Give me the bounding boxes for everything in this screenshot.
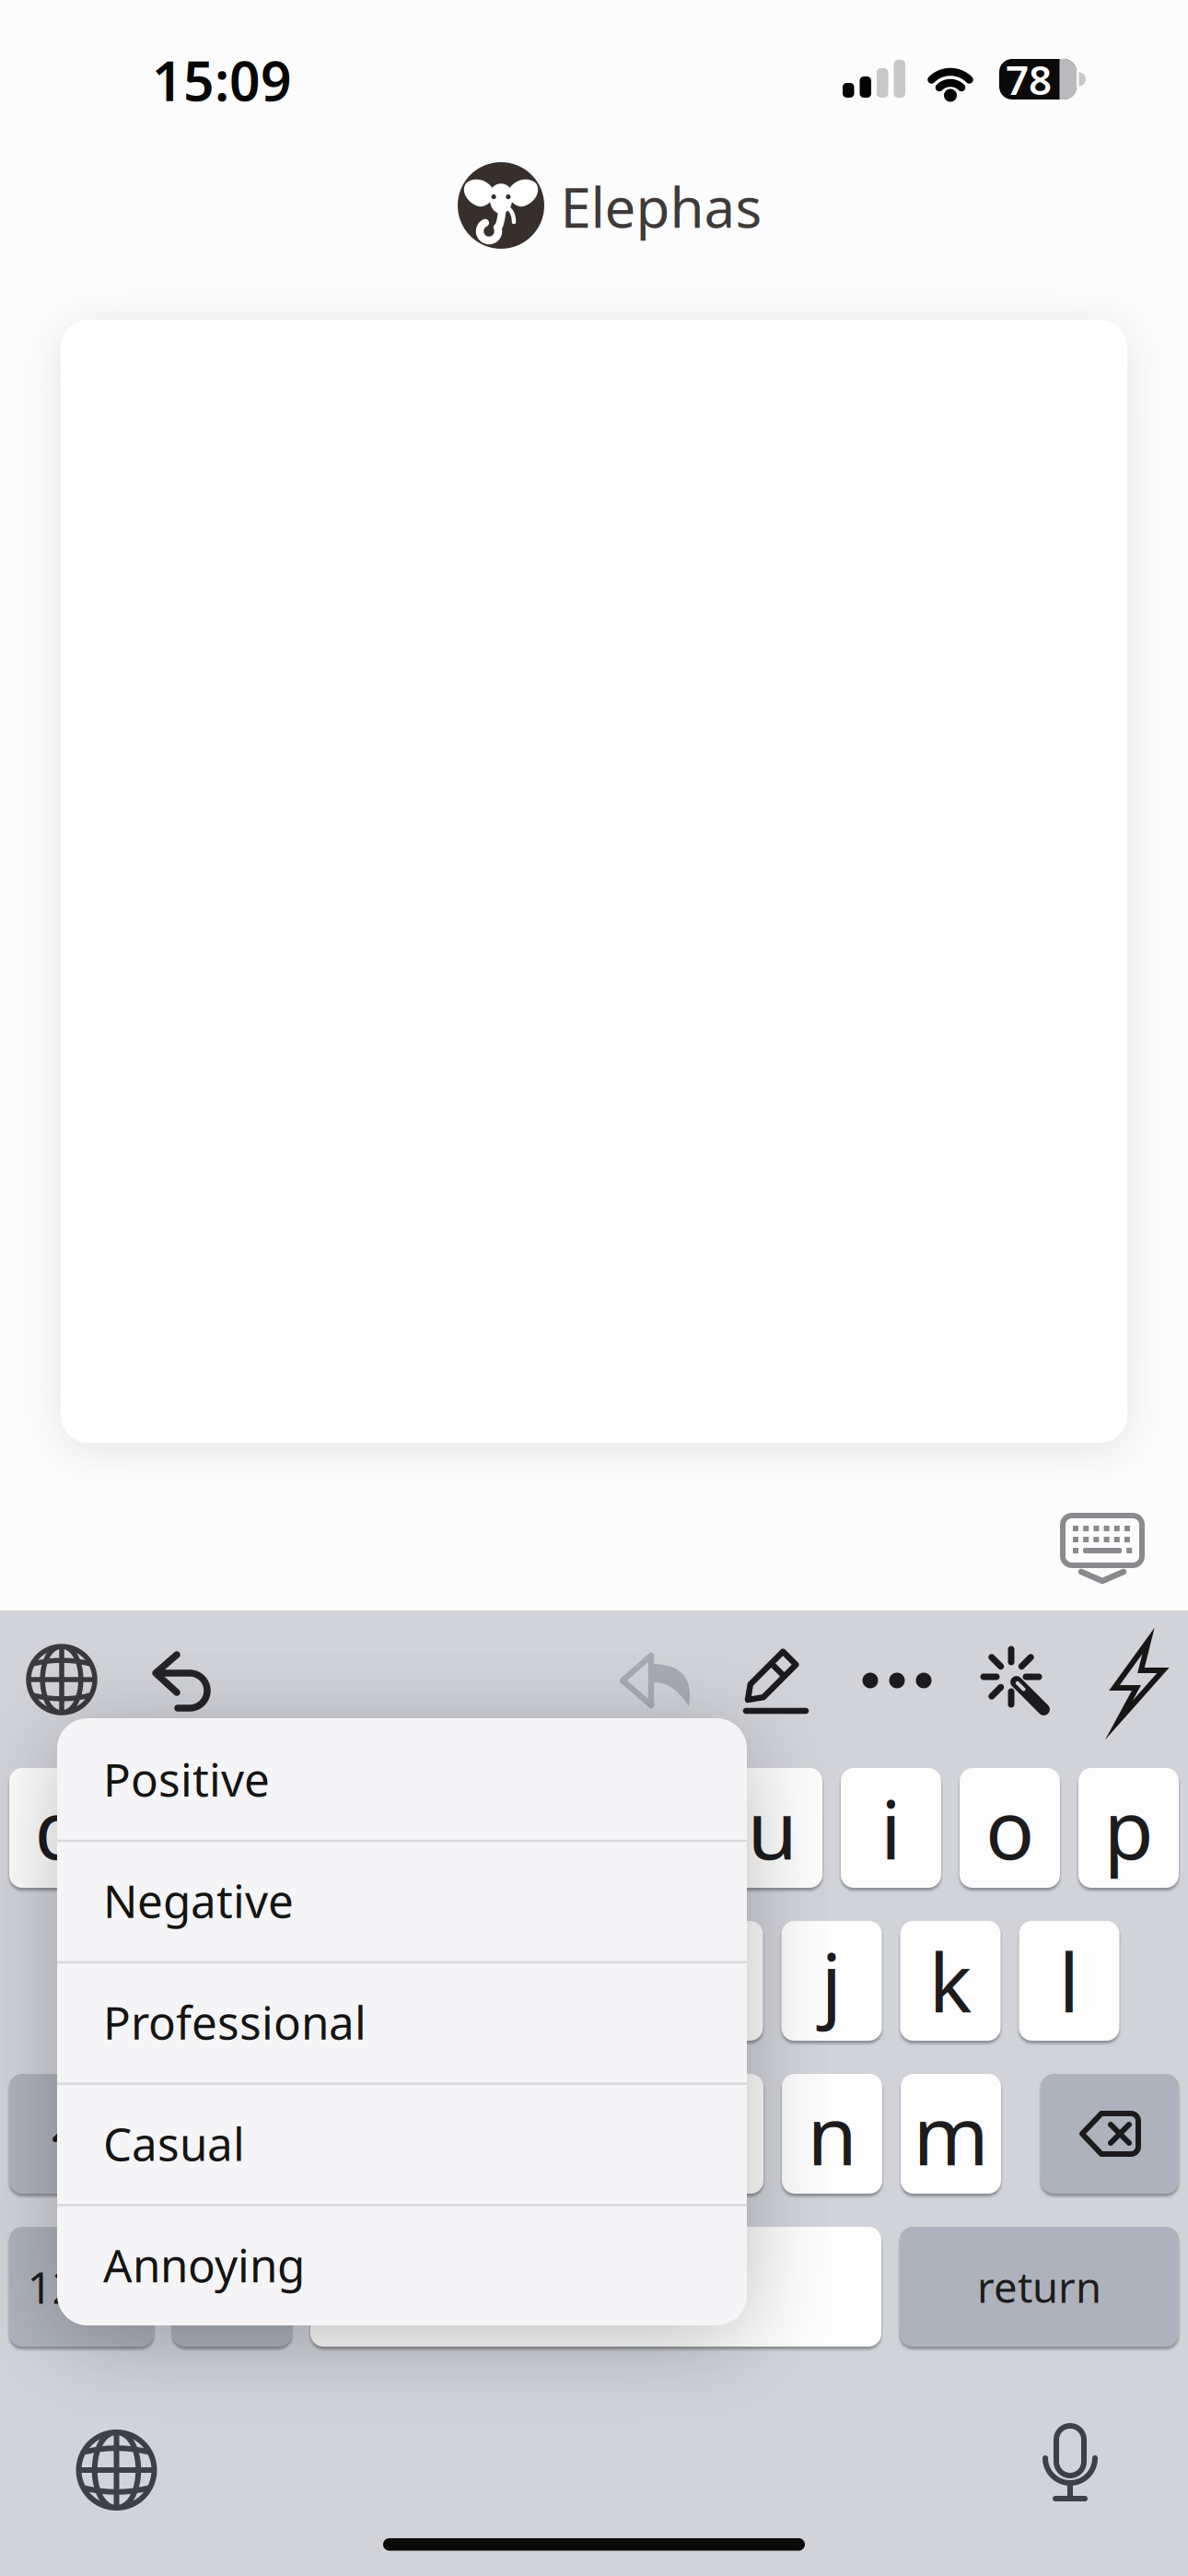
staticText: p xyxy=(1104,1774,1153,1882)
staticText: 123 xyxy=(27,2257,102,2316)
staticText: h xyxy=(688,1927,738,2035)
button[interactable] xyxy=(0,0,1188,2576)
button[interactable]: y xyxy=(603,1768,704,1888)
button[interactable]: Positive xyxy=(57,1718,747,1840)
staticText: r xyxy=(399,1774,432,1882)
staticText: y xyxy=(633,1774,674,1882)
staticText: Professional xyxy=(103,1992,367,2052)
staticText: m xyxy=(913,2080,989,2188)
staticText: Positive xyxy=(103,1749,270,1809)
button[interactable] xyxy=(0,0,1188,2576)
button[interactable]: l xyxy=(1019,1921,1119,2041)
button[interactable]: z xyxy=(188,2074,288,2194)
staticText: n xyxy=(807,2080,857,2188)
button[interactable]: h xyxy=(663,1921,763,2041)
button[interactable]: Professional xyxy=(57,1961,747,2083)
button[interactable]: n xyxy=(782,2074,882,2194)
button[interactable] xyxy=(1041,2074,1179,2194)
button[interactable] xyxy=(0,0,1188,2576)
staticText: Casual xyxy=(103,2113,245,2173)
staticText: c xyxy=(456,2080,495,2188)
staticText: o xyxy=(985,1774,1034,1882)
button[interactable]: j xyxy=(781,1921,882,2041)
staticText: s xyxy=(218,1927,257,2035)
button[interactable] xyxy=(0,0,1188,2576)
button[interactable]: e xyxy=(247,1768,347,1888)
button[interactable] xyxy=(0,0,1188,2576)
staticText: u xyxy=(747,1774,797,1882)
staticText: Elephas xyxy=(560,170,762,243)
button[interactable]: f xyxy=(425,1921,525,2041)
button[interactable]: v xyxy=(544,2074,645,2194)
button[interactable] xyxy=(0,0,1188,2576)
staticText: Negative xyxy=(103,1870,294,1931)
button[interactable]: w xyxy=(128,1768,228,1888)
button[interactable]: return xyxy=(900,2227,1179,2347)
staticText: v xyxy=(574,2080,615,2188)
button[interactable]: t xyxy=(484,1768,585,1888)
staticText: g xyxy=(569,1927,619,2035)
staticText: return xyxy=(977,2259,1101,2314)
button[interactable] xyxy=(310,2227,881,2347)
button[interactable]: k xyxy=(900,1921,1001,2041)
staticText: q xyxy=(35,1774,84,1882)
button[interactable]: i xyxy=(841,1768,941,1888)
staticText: 78 xyxy=(1006,52,1052,106)
button[interactable]: u xyxy=(722,1768,822,1888)
button[interactable]: b xyxy=(663,2074,763,2194)
button[interactable] xyxy=(0,0,1188,2576)
staticText: a xyxy=(96,1927,141,2035)
button[interactable]: a xyxy=(69,1921,169,2041)
button[interactable]: m xyxy=(901,2074,1001,2194)
staticText: b xyxy=(688,2080,738,2188)
staticText: Annoying xyxy=(103,2234,305,2295)
button[interactable] xyxy=(9,2074,147,2194)
button[interactable]: Negative xyxy=(57,1840,747,1961)
staticText: j xyxy=(821,1927,842,2035)
button[interactable]: o xyxy=(960,1768,1060,1888)
staticText: k xyxy=(929,1927,972,2035)
button[interactable]: c xyxy=(425,2074,526,2194)
staticText: e xyxy=(274,1774,320,1882)
button[interactable] xyxy=(0,0,1188,2576)
staticText: t xyxy=(520,1774,549,1882)
button[interactable]: q xyxy=(9,1768,110,1888)
button[interactable]: r xyxy=(366,1768,466,1888)
button[interactable] xyxy=(0,0,1188,2576)
button[interactable]: g xyxy=(544,1921,644,2041)
button[interactable]: s xyxy=(187,1921,288,2041)
staticText: d xyxy=(332,1927,381,2035)
staticText: 15:09 xyxy=(152,44,292,116)
button[interactable] xyxy=(0,0,1188,2576)
button[interactable] xyxy=(172,2227,292,2347)
staticText: w xyxy=(146,1774,210,1882)
staticText: f xyxy=(461,1927,489,2035)
button[interactable]: x xyxy=(307,2074,407,2194)
button[interactable]: d xyxy=(306,1921,407,2041)
staticText: z xyxy=(219,2080,257,2188)
button[interactable] xyxy=(9,2227,154,2347)
button[interactable]: Annoying xyxy=(57,2204,747,2325)
button[interactable]: p xyxy=(1078,1768,1179,1888)
staticText: l xyxy=(1059,1927,1080,2035)
staticText: i xyxy=(880,1774,902,1882)
staticText: x xyxy=(335,2080,379,2188)
button[interactable]: Casual xyxy=(57,2083,747,2204)
